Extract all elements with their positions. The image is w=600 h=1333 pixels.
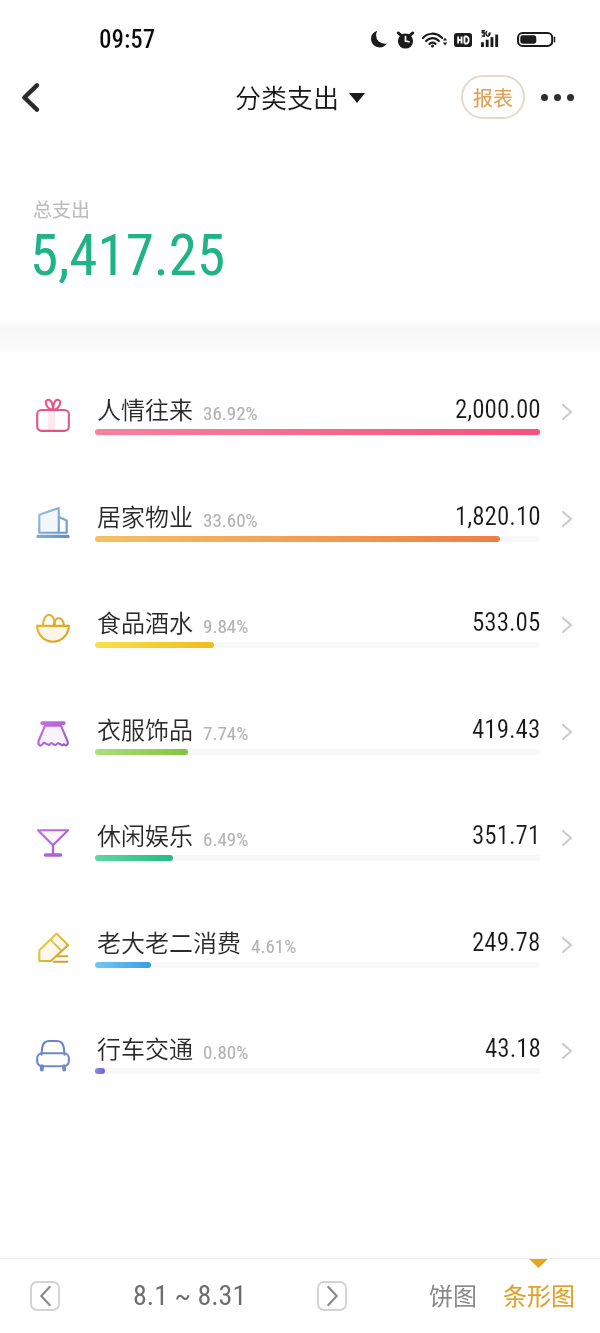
staticText: 533.05: [472, 608, 541, 637]
staticText: 09:57: [99, 25, 156, 54]
staticText: 1,820.10: [455, 502, 541, 531]
staticText: 8.1 ~ 8.31: [133, 1279, 247, 1312]
staticText: 衣服饰品: [97, 711, 193, 746]
staticText: 351.71: [472, 821, 541, 850]
button[interactable]: 食品酒水: [0, 569, 600, 675]
button[interactable]: Back: [5, 72, 55, 122]
staticText: 249.78: [472, 928, 541, 957]
button[interactable]: 条形图: [493, 1265, 585, 1324]
staticText: 饼图: [429, 1277, 477, 1312]
button[interactable]: 分类支出: [235, 78, 365, 116]
staticText: 分类支出: [235, 78, 340, 116]
staticText: 人情往来: [97, 391, 193, 426]
staticText: 43.18: [485, 1034, 541, 1063]
button[interactable]: 衣服饰品: [0, 676, 600, 782]
button[interactable]: 人情往来: [0, 356, 600, 462]
button[interactable]: More options: [533, 76, 581, 118]
staticText: 6.49%: [203, 828, 249, 850]
staticText: 居家物业: [97, 498, 193, 533]
staticText: 休闲娱乐: [97, 817, 193, 852]
staticText: 条形图: [503, 1277, 575, 1312]
staticText: 7.74%: [203, 722, 249, 744]
button[interactable]: 饼图: [419, 1265, 487, 1324]
staticText: 2,000.00: [455, 395, 541, 424]
staticText: 老大老二消费: [97, 924, 241, 959]
button[interactable]: 老大老二消费: [0, 889, 600, 995]
staticText: 行车交通: [97, 1030, 193, 1065]
button[interactable]: 报表: [461, 75, 525, 119]
staticText: 9.84%: [203, 615, 249, 637]
staticText: 36.92%: [203, 402, 258, 424]
staticText: 报表: [473, 83, 513, 112]
button[interactable]: 居家物业: [0, 463, 600, 569]
staticText: 总支出: [33, 195, 91, 223]
staticText: 33.60%: [203, 509, 258, 531]
button[interactable]: Next month: [317, 1281, 347, 1311]
staticText: 0.80%: [203, 1041, 249, 1063]
staticText: 食品酒水: [97, 604, 193, 639]
button[interactable]: 行车交通: [0, 995, 600, 1101]
staticText: 4.61%: [251, 935, 297, 957]
button[interactable]: 休闲娱乐: [0, 782, 600, 888]
staticText: 5,417.25: [30, 222, 226, 289]
button[interactable]: Previous month: [30, 1281, 60, 1311]
staticText: 419.43: [472, 715, 541, 744]
